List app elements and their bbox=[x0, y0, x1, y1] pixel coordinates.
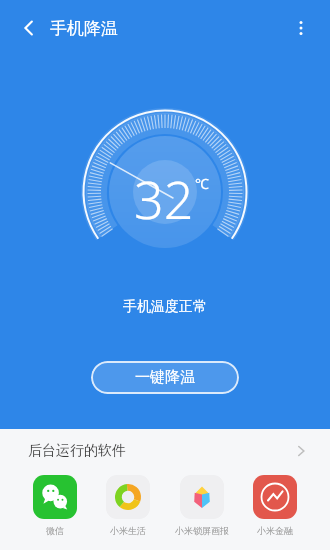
staticText: ℃ bbox=[195, 174, 209, 193]
staticText: 手机降温 bbox=[50, 18, 118, 39]
staticText: 后台运行的软件 bbox=[28, 442, 126, 460]
staticText: 一键降温 bbox=[135, 368, 195, 387]
staticText: 32 bbox=[134, 163, 194, 234]
staticText: 手机温度正常 bbox=[123, 298, 207, 316]
staticText: 小米金融 bbox=[257, 525, 293, 536]
button[interactable]: 小米锁屏画报 bbox=[167, 473, 237, 536]
staticText: 微信 bbox=[46, 525, 64, 536]
button[interactable]: More options bbox=[284, 11, 318, 45]
button[interactable]: 微信 bbox=[20, 473, 90, 536]
button[interactable]: 后台运行的软件 bbox=[0, 429, 330, 473]
staticText: 小米生活 bbox=[110, 525, 146, 536]
button[interactable]: 小米生活 bbox=[93, 473, 163, 536]
button[interactable]: 一键降温 bbox=[91, 361, 239, 394]
button[interactable]: Back bbox=[12, 11, 46, 45]
button[interactable]: 小米金融 bbox=[240, 473, 310, 536]
staticText: 小米锁屏画报 bbox=[175, 525, 229, 536]
